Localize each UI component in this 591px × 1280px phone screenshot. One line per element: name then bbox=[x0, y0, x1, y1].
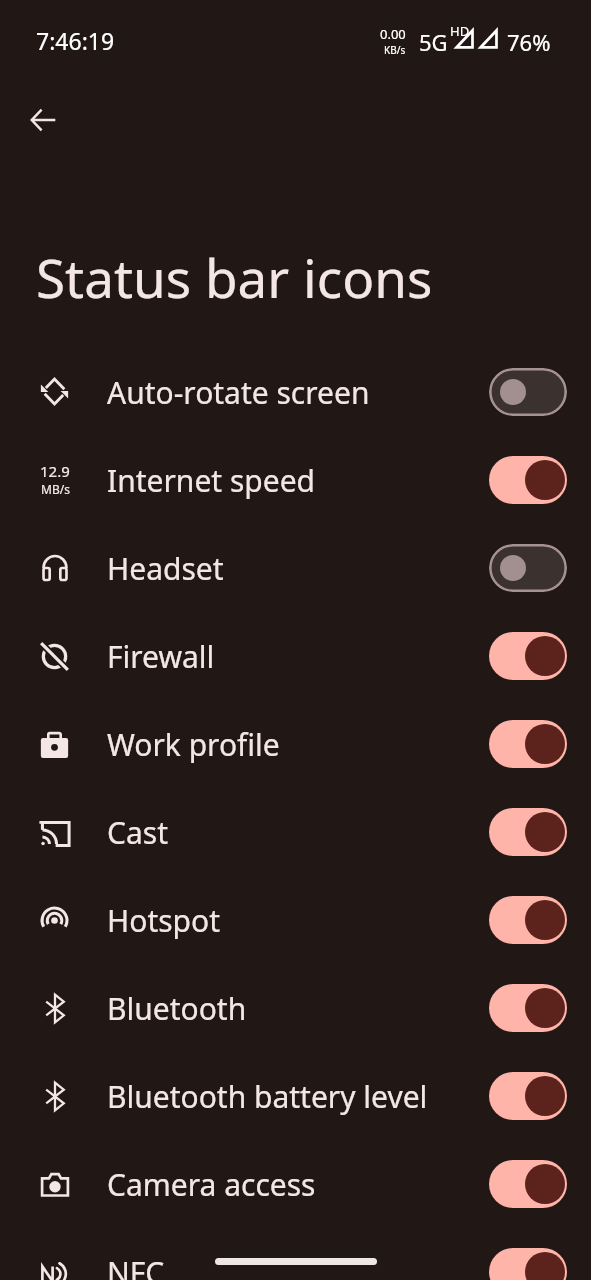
button[interactable]: Back bbox=[19, 96, 67, 144]
button[interactable]: Auto-rotate screen bbox=[0, 348, 591, 436]
button[interactable]: Toggle on bbox=[489, 984, 567, 1032]
button[interactable]: Toggle on bbox=[489, 1248, 567, 1280]
staticText: MB/s bbox=[41, 481, 70, 497]
staticText: Auto-rotate screen bbox=[107, 372, 370, 413]
button[interactable]: Firewall bbox=[0, 612, 591, 700]
staticText: Firewall bbox=[107, 636, 215, 677]
button[interactable]: Toggle on bbox=[489, 808, 567, 856]
button[interactable]: Toggle on bbox=[489, 632, 567, 680]
button[interactable]: Toggle off bbox=[489, 368, 567, 416]
staticText: 76% bbox=[507, 27, 551, 57]
button[interactable]: Headset bbox=[0, 524, 591, 612]
staticText: Hotspot bbox=[107, 900, 221, 941]
button[interactable]: Hotspot bbox=[0, 876, 591, 964]
button[interactable]: Bluetooth bbox=[0, 964, 591, 1052]
button[interactable]: Toggle on bbox=[489, 720, 567, 768]
button[interactable]: Toggle on bbox=[489, 456, 567, 504]
staticText: Headset bbox=[107, 548, 224, 589]
button[interactable]: Work profile bbox=[0, 700, 591, 788]
button[interactable]: Camera access bbox=[0, 1140, 591, 1228]
staticText: Cast bbox=[107, 812, 168, 853]
button[interactable]: Bluetooth battery level bbox=[0, 1052, 591, 1140]
staticText: Bluetooth battery level bbox=[107, 1076, 428, 1117]
button[interactable]: Toggle on bbox=[489, 1160, 567, 1208]
button[interactable]: Cast bbox=[0, 788, 591, 876]
staticText: Internet speed bbox=[107, 460, 316, 501]
staticText: KB/s bbox=[384, 43, 406, 57]
button[interactable]: NFC bbox=[0, 1228, 591, 1280]
staticText: 0.00 bbox=[380, 25, 406, 43]
staticText: 5G bbox=[419, 27, 448, 57]
button[interactable]: Toggle on bbox=[489, 896, 567, 944]
staticText: Bluetooth bbox=[107, 988, 247, 1029]
button[interactable]: 12.9 bbox=[0, 436, 591, 524]
staticText: 12.9 bbox=[40, 461, 70, 481]
staticText: 7:46:19 bbox=[36, 25, 115, 56]
button[interactable]: Toggle off bbox=[489, 544, 567, 592]
button[interactable]: Toggle on bbox=[489, 1072, 567, 1120]
staticText: NFC bbox=[107, 1252, 165, 1280]
staticText: HD bbox=[450, 22, 470, 40]
staticText: Camera access bbox=[107, 1164, 316, 1205]
staticText: Work profile bbox=[107, 724, 280, 765]
staticText: Status bar icons bbox=[36, 241, 433, 313]
